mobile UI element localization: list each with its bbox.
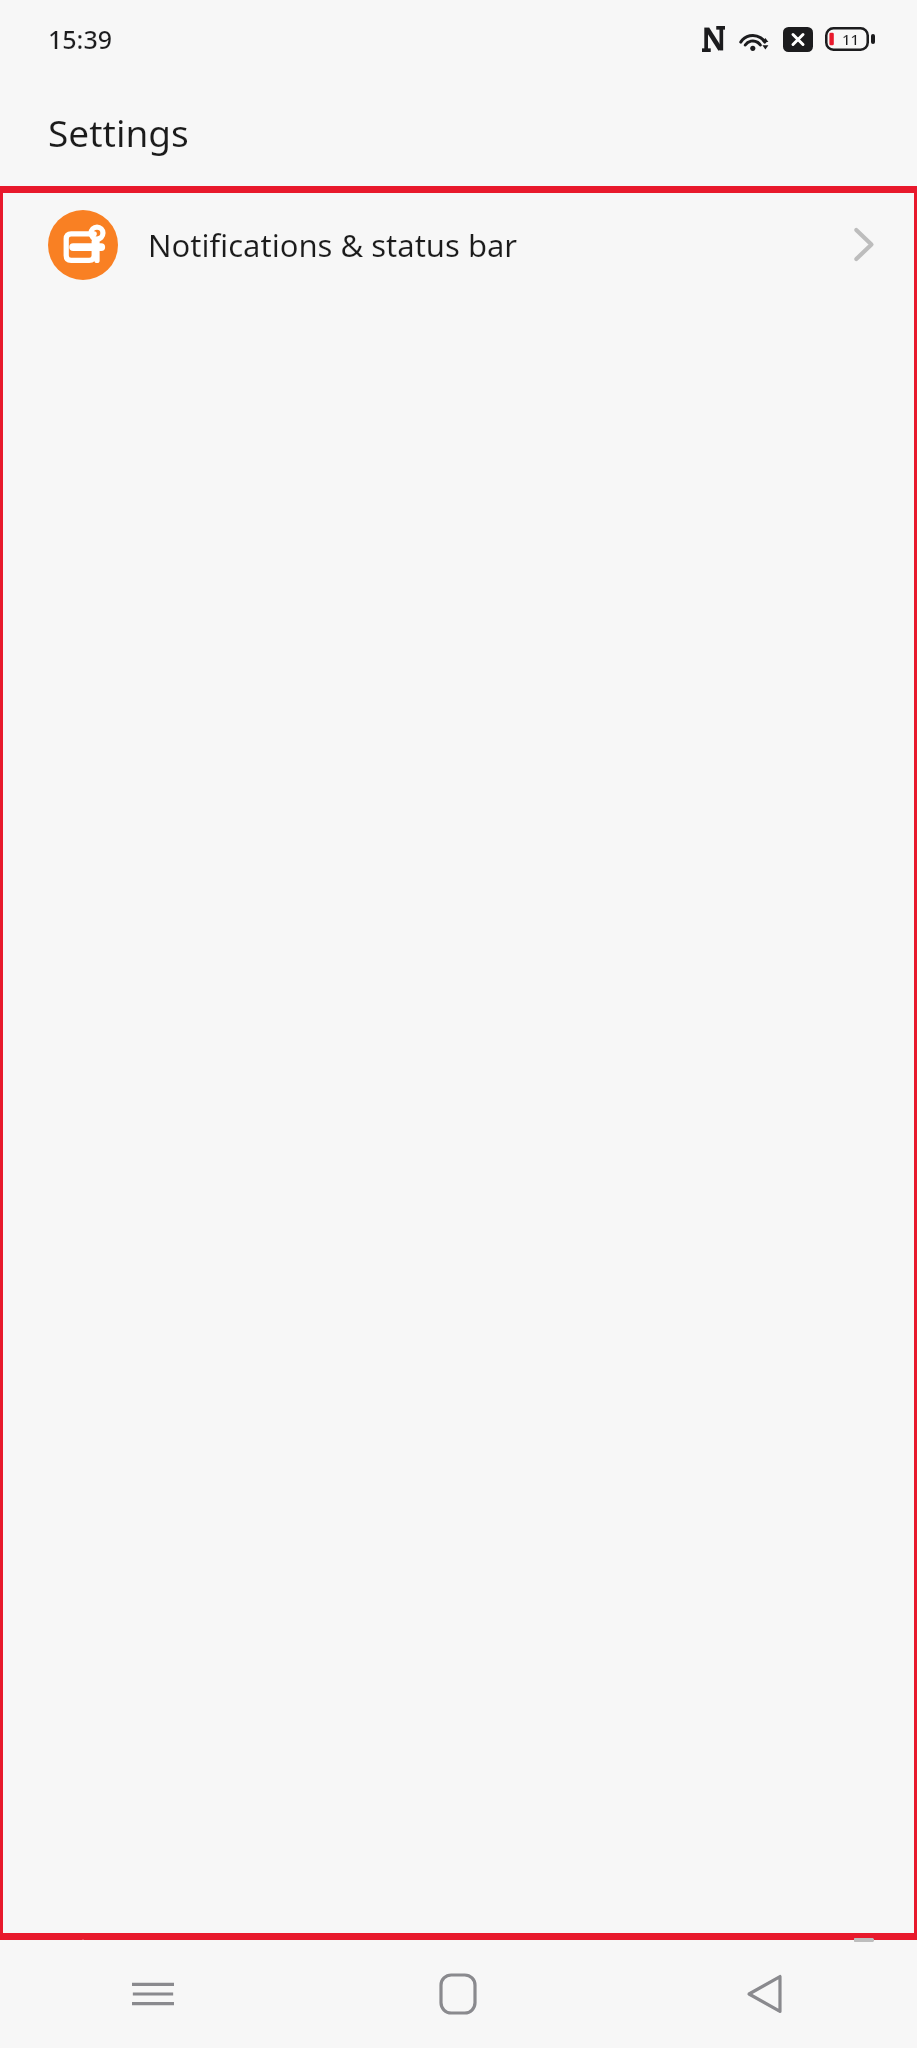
button[interactable]: Notifications & status bar <box>0 186 917 303</box>
staticText: Notifications & status bar <box>148 224 842 266</box>
button[interactable]: Back <box>611 1940 917 2048</box>
staticText: 15:39 <box>48 22 113 56</box>
staticText: 11 <box>842 29 860 49</box>
staticText: Settings <box>48 107 189 157</box>
button[interactable]: Recent apps <box>0 1940 305 2048</box>
button[interactable]: Home <box>305 1940 611 2048</box>
